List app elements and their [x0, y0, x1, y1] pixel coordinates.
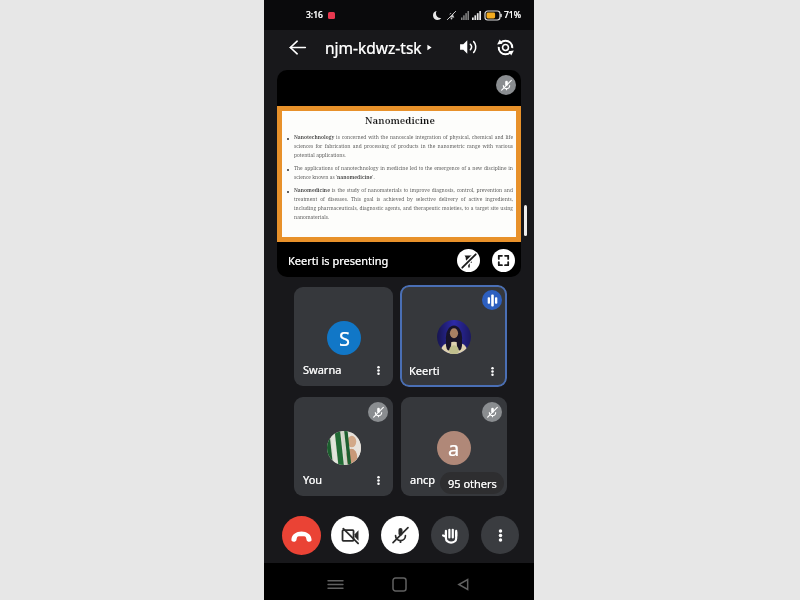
button[interactable]: Back [446, 567, 480, 600]
staticText: a [448, 435, 460, 462]
button[interactable]: a [401, 397, 507, 496]
staticText: Keerti [409, 363, 440, 378]
staticText: Nanomedicine is the study of nanomateria… [294, 187, 513, 221]
staticText: Keerti is presenting [288, 253, 389, 268]
button[interactable]: Speaking [400, 285, 507, 387]
staticText: 3:16 [306, 9, 323, 21]
staticText: 95 others [448, 476, 497, 491]
button[interactable]: Back [280, 30, 314, 64]
button[interactable]: More options [481, 516, 519, 554]
other: Speaking [482, 290, 502, 310]
other: Muted [368, 402, 388, 422]
button[interactable]: More options [369, 471, 387, 489]
staticText: Swarna [303, 362, 342, 377]
button[interactable]: Unpin [457, 249, 480, 272]
button[interactable]: End call [282, 516, 321, 555]
button[interactable]: More options [483, 362, 501, 380]
staticText: Nanomedicine [287, 114, 513, 127]
staticText: 71% [504, 9, 521, 21]
button[interactable]: Unmute [381, 516, 419, 554]
button[interactable]: Recents [318, 567, 352, 600]
button[interactable]: Muted [277, 70, 521, 277]
button[interactable]: 95 others [440, 472, 504, 494]
staticText: The applications of nanotechnology in me… [294, 165, 513, 181]
staticText: S [339, 325, 350, 352]
button[interactable]: More options [483, 471, 501, 489]
button[interactable]: S [294, 287, 393, 386]
button[interactable]: njm-kdwz-tsk [322, 27, 436, 67]
staticText: You [303, 472, 323, 487]
staticText: njm-kdwz-tsk [325, 37, 422, 58]
button[interactable]: Speaker [451, 30, 485, 64]
staticText: ancp [410, 472, 436, 487]
button[interactable]: Turn on camera [331, 516, 369, 554]
staticText: Nanotechnology is concerned with the nan… [294, 134, 513, 159]
button[interactable]: Muted [294, 397, 393, 496]
button[interactable]: Home [382, 567, 416, 600]
other: Muted [482, 402, 502, 422]
button[interactable]: Switch camera [488, 30, 522, 64]
button[interactable]: Full screen [492, 249, 515, 272]
button[interactable]: Raise hand [431, 516, 469, 554]
other: Muted [496, 75, 516, 95]
button[interactable]: More options [369, 361, 387, 379]
